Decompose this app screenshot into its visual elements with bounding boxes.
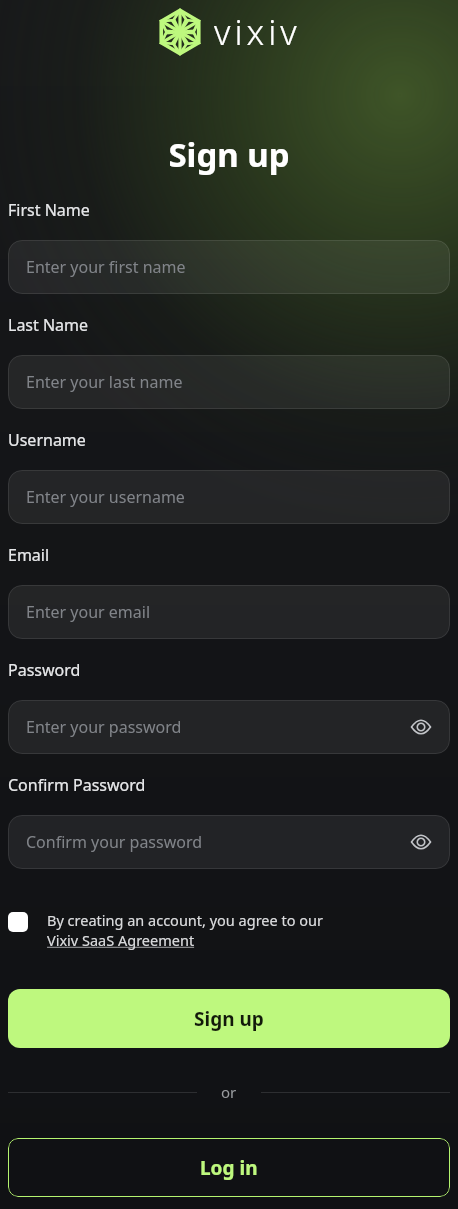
staticText: Email xyxy=(8,544,50,566)
staticText: By creating an account, you agree to our xyxy=(47,910,323,930)
button[interactable]: Enter your password xyxy=(8,700,450,754)
button[interactable]: Enter your last name xyxy=(8,355,450,409)
button[interactable]: Sign up xyxy=(8,989,450,1048)
staticText: vixiv xyxy=(214,8,301,56)
staticText: Log in xyxy=(200,1155,258,1181)
staticText: Password xyxy=(8,659,81,681)
staticText: Sign up xyxy=(8,132,450,177)
button[interactable]: Enter your first name xyxy=(8,240,450,294)
staticText: Enter your last name xyxy=(26,371,183,393)
staticText: Vixiv SaaS Agreement xyxy=(47,930,195,950)
staticText: Enter your first name xyxy=(26,256,186,278)
button[interactable]: By creating an account, you agree to our xyxy=(8,910,450,950)
staticText: Username xyxy=(8,429,86,451)
staticText: Last Name xyxy=(8,314,89,336)
staticText: Sign up xyxy=(194,1006,264,1032)
staticText: First Name xyxy=(8,199,90,221)
staticText: Confirm your password xyxy=(26,831,203,853)
button[interactable]: Enter your username xyxy=(8,470,450,524)
button[interactable]: Log in xyxy=(8,1138,450,1197)
staticText: Enter your username xyxy=(26,486,185,508)
staticText: Confirm Password xyxy=(8,774,146,796)
staticText: Enter your password xyxy=(26,716,182,738)
staticText: or xyxy=(221,1082,237,1102)
button[interactable]: Enter your email xyxy=(8,585,450,639)
staticText: Enter your email xyxy=(26,601,151,623)
button[interactable]: Confirm your password xyxy=(8,815,450,869)
